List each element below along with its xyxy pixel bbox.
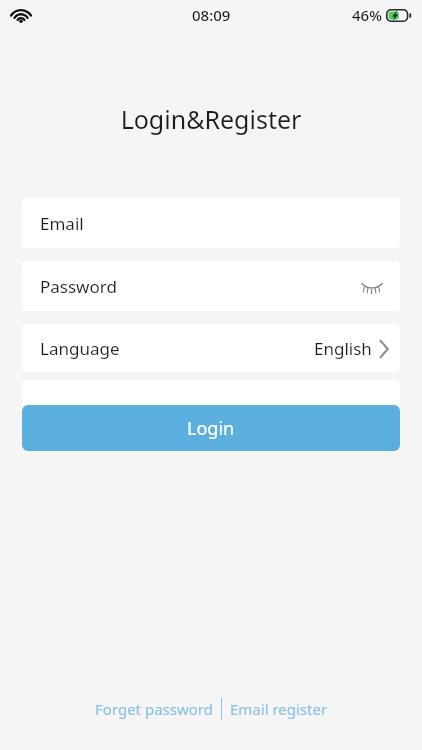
staticText: Forget password (95, 699, 213, 719)
button[interactable]: Language (22, 324, 400, 372)
staticText: English (314, 337, 372, 360)
staticText: Email (40, 212, 84, 235)
staticText: Language (40, 337, 120, 360)
staticText: Login (187, 416, 235, 441)
button[interactable]: Login (22, 405, 400, 451)
staticText: Login&Register (0, 102, 422, 136)
button[interactable]: Password (22, 261, 400, 311)
staticText: 08:09 (192, 5, 231, 25)
button[interactable]: Forget password (87, 694, 221, 724)
staticText: 46% (352, 5, 382, 25)
staticText: Password (40, 275, 117, 298)
button[interactable]: Email register (222, 694, 336, 724)
staticText: Email register (230, 699, 328, 719)
button[interactable]: Email (22, 198, 400, 248)
button[interactable]: Show password (354, 268, 390, 304)
